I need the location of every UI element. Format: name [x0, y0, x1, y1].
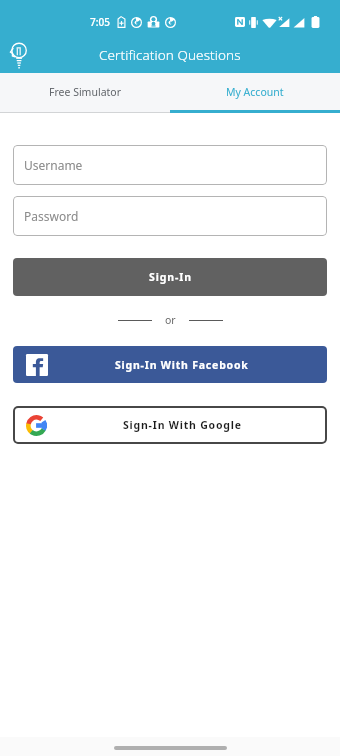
staticText: Free Simulator — [49, 85, 122, 99]
staticText: Sign-In With Google — [123, 418, 242, 432]
staticText: Password — [24, 208, 79, 224]
staticText: or — [165, 313, 176, 327]
button[interactable]: Sign-In With Google — [13, 406, 327, 444]
button[interactable]: Free Simulator — [0, 73, 170, 110]
staticText: Certification Questions — [99, 46, 241, 64]
button[interactable]: Sign-In With Facebook — [13, 346, 327, 383]
button[interactable]: Username — [13, 145, 327, 185]
button[interactable]: Password — [13, 196, 327, 236]
staticText: Sign-In With Facebook — [115, 358, 249, 372]
button[interactable]: Sign-In — [13, 258, 327, 296]
staticText: Sign-In — [149, 270, 192, 284]
button[interactable]: My Account — [170, 73, 340, 110]
staticText: Username — [24, 157, 83, 173]
staticText: 7:05 — [90, 15, 110, 29]
button[interactable]: App logo — [3, 40, 33, 70]
staticText: My Account — [226, 85, 284, 99]
